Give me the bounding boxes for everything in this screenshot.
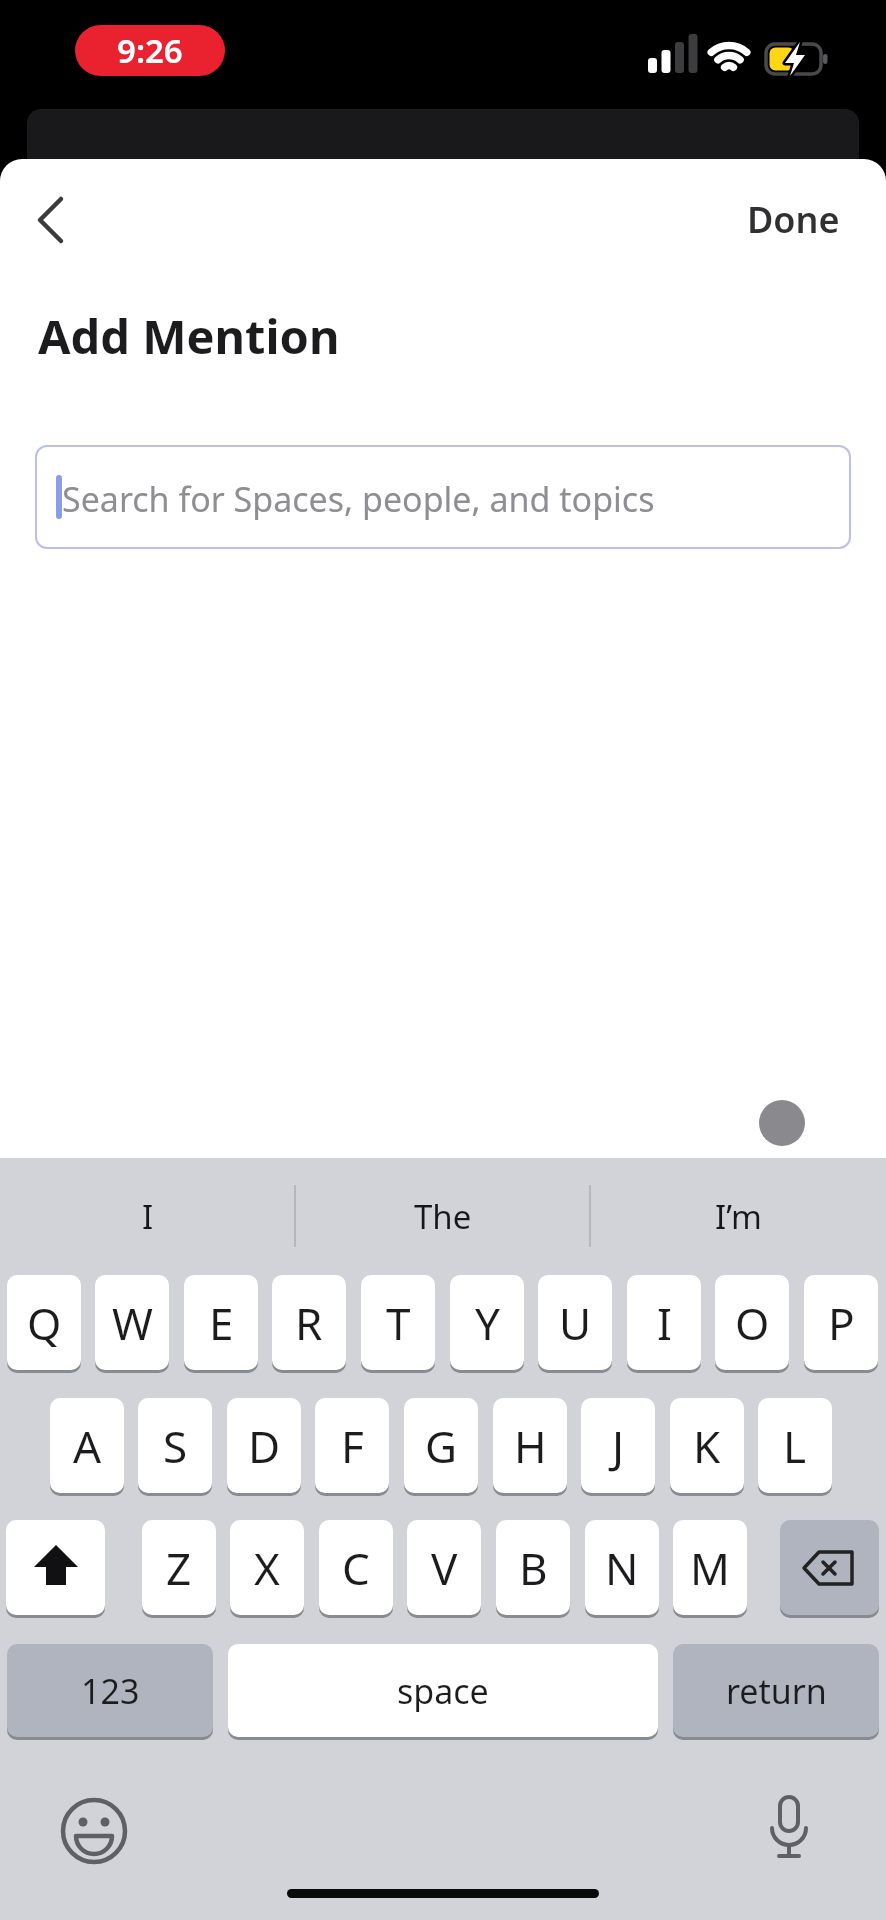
button[interactable]: J [581, 1398, 655, 1493]
staticText: W [112, 1293, 153, 1353]
staticText: Q [27, 1293, 62, 1353]
button[interactable] [24, 192, 79, 247]
button[interactable]: B [496, 1520, 570, 1615]
button[interactable] [6, 1520, 105, 1615]
staticText: F [341, 1416, 364, 1476]
staticText: Search for Spaces, people, and topics [62, 476, 655, 522]
staticText: I [142, 1194, 154, 1239]
staticText: C [342, 1538, 370, 1598]
button[interactable]: return [673, 1644, 879, 1737]
staticText: 9:26 [117, 28, 183, 73]
button[interactable]: M [673, 1520, 747, 1615]
staticText: K [693, 1416, 721, 1476]
button[interactable]: Z [142, 1520, 216, 1615]
button[interactable]: O [715, 1275, 789, 1370]
staticText: J [612, 1416, 625, 1476]
staticText: X [254, 1538, 280, 1598]
staticText: Add Mention [38, 304, 340, 368]
staticText: U [559, 1293, 592, 1353]
button[interactable]: F [315, 1398, 389, 1493]
staticText: M [690, 1538, 730, 1598]
button[interactable]: Q [7, 1275, 81, 1370]
staticText: Done [747, 195, 840, 244]
staticText: space [397, 1668, 489, 1714]
staticText: T [386, 1293, 411, 1353]
button[interactable]: W [95, 1275, 169, 1370]
button[interactable]: Y [450, 1275, 524, 1370]
button[interactable]: space [228, 1644, 658, 1737]
button[interactable]: I [0, 1158, 295, 1275]
button[interactable]: Done [700, 189, 840, 249]
button[interactable]: Search for Spaces, people, and topics [35, 445, 851, 549]
button[interactable]: K [670, 1398, 744, 1493]
staticText: V [431, 1538, 458, 1598]
button[interactable]: I [627, 1275, 701, 1370]
button[interactable]: S [138, 1398, 212, 1493]
button[interactable]: P [804, 1275, 878, 1370]
staticText: 123 [81, 1668, 140, 1714]
staticText: Y [475, 1293, 500, 1353]
staticText: I [657, 1293, 672, 1353]
button[interactable]: The [295, 1158, 590, 1275]
button[interactable]: D [227, 1398, 301, 1493]
button[interactable]: R [272, 1275, 346, 1370]
staticText: P [828, 1293, 855, 1353]
button[interactable]: L [758, 1398, 832, 1493]
button[interactable]: T [361, 1275, 435, 1370]
button[interactable]: X [230, 1520, 304, 1615]
button[interactable]: 123 [7, 1644, 213, 1737]
button[interactable] [780, 1520, 879, 1615]
staticText: L [783, 1416, 807, 1476]
staticText: Z [166, 1538, 192, 1598]
button[interactable]: V [407, 1520, 481, 1615]
staticText: B [519, 1538, 548, 1598]
button[interactable] [754, 1793, 824, 1869]
button[interactable]: C [319, 1520, 393, 1615]
staticText: O [735, 1293, 770, 1353]
staticText: D [248, 1416, 281, 1476]
staticText: G [425, 1416, 458, 1476]
staticText: I’m [715, 1194, 762, 1239]
staticText: R [295, 1293, 323, 1353]
button[interactable] [59, 1796, 129, 1866]
staticText: S [163, 1416, 188, 1476]
staticText: A [73, 1416, 102, 1476]
button[interactable]: A [50, 1398, 124, 1493]
button[interactable]: U [538, 1275, 612, 1370]
button[interactable]: G [404, 1398, 478, 1493]
button[interactable]: E [184, 1275, 258, 1370]
button[interactable]: N [585, 1520, 659, 1615]
button[interactable]: H [493, 1398, 567, 1493]
staticText: N [605, 1538, 639, 1598]
staticText: return [726, 1668, 827, 1714]
staticText: E [209, 1293, 234, 1353]
staticText: H [514, 1416, 547, 1476]
button[interactable]: I’m [590, 1158, 886, 1275]
staticText: The [414, 1194, 472, 1239]
